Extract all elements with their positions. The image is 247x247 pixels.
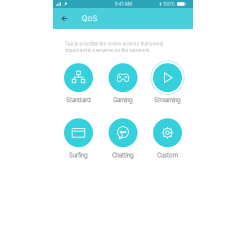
button[interactable]: Standard	[56, 60, 101, 104]
staticText: Streaming	[154, 97, 181, 104]
staticText: QoS	[81, 14, 97, 23]
button[interactable]: Gaming	[101, 60, 145, 104]
button[interactable]: Back	[53, 8, 76, 29]
staticText: Custom	[157, 152, 178, 159]
staticText: important to everyone on the network.	[65, 48, 150, 53]
staticText: Standard	[66, 97, 91, 104]
button[interactable]: Chatting	[101, 115, 145, 159]
button[interactable]: Custom	[145, 115, 190, 159]
staticText: 100%	[163, 1, 176, 7]
staticText: Gaming	[113, 97, 133, 104]
staticText: Chatting	[112, 152, 134, 159]
staticText: Tap to prioritize the online activity th…	[65, 41, 163, 46]
button[interactable]: Surfing	[56, 115, 101, 159]
staticText: 9:41 AM	[114, 1, 131, 7]
button[interactable]: Streaming	[145, 60, 190, 104]
staticText: Surfing	[69, 152, 88, 159]
